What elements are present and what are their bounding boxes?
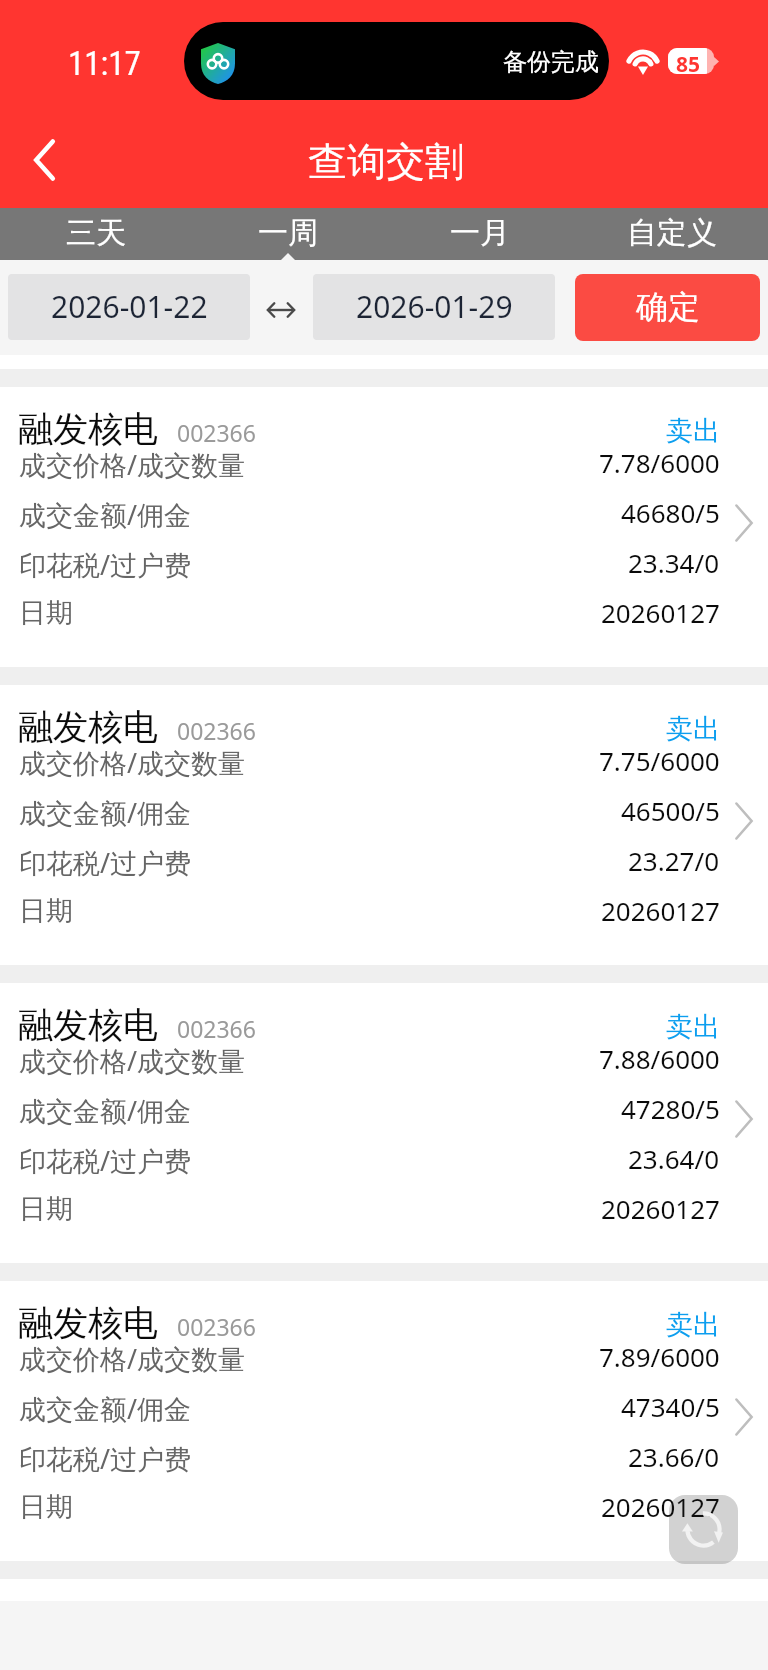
staticText: 20260127 <box>601 595 720 630</box>
button[interactable]: 融发核电 <box>0 983 768 1263</box>
staticText: 一月 <box>450 214 510 252</box>
staticText: 23.27/0 <box>628 843 720 878</box>
staticText: 查询交割 <box>308 137 464 186</box>
staticText: 三天 <box>66 214 126 252</box>
staticText: 成交价格/成交数量 <box>19 744 246 781</box>
staticText: 融发核电 <box>18 407 158 451</box>
button[interactable]: 融发核电 <box>0 685 768 965</box>
staticText: 23.34/0 <box>628 545 720 580</box>
button[interactable]: 三天 <box>0 208 192 260</box>
button[interactable]: 一月 <box>384 208 576 260</box>
staticText: 7.78/6000 <box>599 445 720 480</box>
staticText: 7.88/6000 <box>599 1041 720 1076</box>
staticText: 46500/5 <box>621 793 720 828</box>
staticText: 7.75/6000 <box>599 743 720 778</box>
staticText: 印花税/过户费 <box>19 1142 192 1179</box>
button[interactable]: Refresh <box>669 1495 738 1564</box>
staticText: 自定义 <box>627 214 717 252</box>
button[interactable]: 自定义 <box>576 208 768 260</box>
staticText: 成交价格/成交数量 <box>19 1042 246 1079</box>
staticText: 002366 <box>177 417 256 448</box>
staticText: 20260127 <box>601 893 720 928</box>
staticText: 成交金额/佣金 <box>19 496 192 533</box>
button[interactable]: 确定 <box>575 274 760 341</box>
button[interactable]: 融发核电 <box>0 1281 768 1561</box>
staticText: 确定 <box>636 287 700 327</box>
staticText: 印花税/过户费 <box>19 844 192 881</box>
button[interactable]: Back <box>8 124 80 196</box>
staticText: 11:17 <box>68 44 141 83</box>
staticText: 印花税/过户费 <box>19 546 192 583</box>
staticText: 85 <box>676 50 701 74</box>
staticText: 47280/5 <box>621 1091 720 1126</box>
staticText: 日期 <box>19 1192 73 1226</box>
staticText: 卖出 <box>666 1308 720 1342</box>
staticText: 23.66/0 <box>628 1439 720 1474</box>
staticText: 一周 <box>258 214 318 252</box>
staticText: 成交金额/佣金 <box>19 1390 192 1427</box>
staticText: 成交价格/成交数量 <box>19 1340 246 1377</box>
staticText: 成交金额/佣金 <box>19 794 192 831</box>
staticText: 日期 <box>19 1490 73 1524</box>
button[interactable]: 2026-01-29 <box>313 274 555 340</box>
staticText: 日期 <box>19 894 73 928</box>
staticText: 002366 <box>177 1311 256 1342</box>
staticText: 成交价格/成交数量 <box>19 446 246 483</box>
button[interactable]: 融发核电 <box>0 387 768 667</box>
staticText: 印花税/过户费 <box>19 1440 192 1477</box>
staticText: 融发核电 <box>18 1003 158 1047</box>
button[interactable]: 2026-01-22 <box>8 274 250 340</box>
staticText: 002366 <box>177 1013 256 1044</box>
staticText: 23.64/0 <box>628 1141 720 1176</box>
staticText: 备份完成 <box>503 47 599 77</box>
staticText: 融发核电 <box>18 705 158 749</box>
staticText: 20260127 <box>601 1191 720 1226</box>
staticText: 成交金额/佣金 <box>19 1092 192 1129</box>
button[interactable]: 一周 <box>192 208 384 260</box>
staticText: 002366 <box>177 715 256 746</box>
staticText: 46680/5 <box>621 495 720 530</box>
staticText: 2026-01-22 <box>51 286 208 327</box>
staticText: 卖出 <box>666 712 720 746</box>
staticText: 卖出 <box>666 414 720 448</box>
staticText: 20260127 <box>601 1489 720 1524</box>
staticText: 融发核电 <box>18 1301 158 1345</box>
staticText: 卖出 <box>666 1010 720 1044</box>
staticText: 7.89/6000 <box>599 1339 720 1374</box>
staticText: 2026-01-29 <box>356 286 513 327</box>
staticText: 47340/5 <box>621 1389 720 1424</box>
staticText: 日期 <box>19 596 73 630</box>
